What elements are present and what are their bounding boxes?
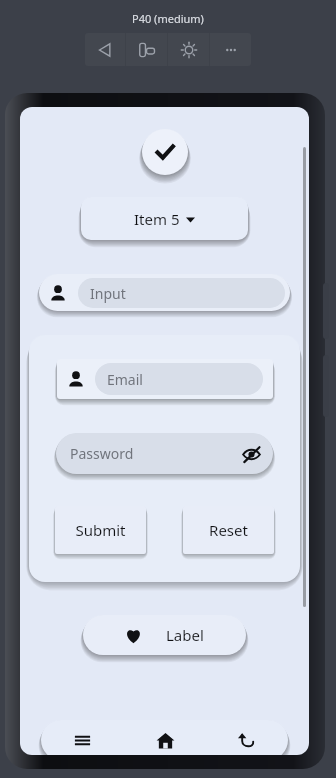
button[interactable]: Email <box>57 359 273 399</box>
button[interactable]: Password <box>56 433 273 474</box>
staticText: Label <box>166 625 204 645</box>
button[interactable]: Back <box>85 33 125 66</box>
button[interactable]: Toggle password visibility <box>239 442 263 466</box>
staticText: Reset <box>209 520 248 540</box>
button[interactable]: Label <box>83 615 246 655</box>
button[interactable]: Brightness <box>168 33 209 66</box>
button[interactable]: Back <box>206 720 288 755</box>
button[interactable]: Input <box>39 274 290 311</box>
staticText: Email <box>107 370 143 389</box>
staticText: Submit <box>75 520 126 540</box>
button[interactable]: Submit <box>55 506 146 554</box>
staticText: Input <box>90 284 126 303</box>
button[interactable]: Reset <box>183 506 274 554</box>
staticText: Password <box>70 444 134 463</box>
button[interactable]: Confirm <box>142 129 188 175</box>
button[interactable]: Item 5 <box>81 197 248 240</box>
button[interactable]: More <box>210 33 251 66</box>
button[interactable]: Rotate <box>126 33 167 66</box>
button[interactable]: Home <box>124 720 206 755</box>
staticText: P40 (medium) <box>132 11 204 26</box>
button[interactable]: Menu <box>41 720 124 755</box>
staticText: Item 5 <box>134 209 180 229</box>
